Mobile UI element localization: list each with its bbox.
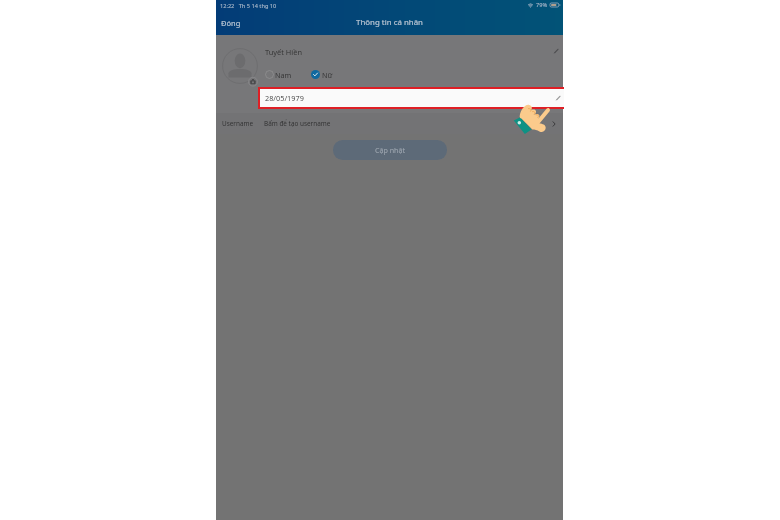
staticText: 12:22 Th 5 14 thg 10 — [220, 2, 277, 10]
staticText: Tuyết Hiền — [265, 47, 302, 57]
staticText: Đóng — [221, 18, 241, 28]
button[interactable]: Username — [216, 113, 563, 134]
staticText: Nam — [275, 70, 292, 79]
staticText: 28/05/1979 — [265, 93, 304, 103]
button[interactable]: 28/05/1979 — [260, 89, 564, 107]
staticText: Nữ — [322, 70, 333, 79]
staticText: Bấm để tạo username — [264, 119, 331, 128]
button[interactable]: Cập nhật — [333, 140, 447, 160]
other: Edit birthday — [555, 95, 561, 101]
button[interactable]: Đóng — [218, 16, 244, 30]
staticText: Username — [222, 119, 254, 128]
staticText: Cập nhật — [375, 145, 405, 155]
button[interactable]: Edit name — [553, 48, 559, 54]
other: Open username — [550, 120, 558, 128]
button[interactable]: Nữ — [311, 70, 333, 79]
staticText: Thông tin cá nhân — [356, 17, 423, 28]
staticText: 79% — [536, 1, 548, 9]
button[interactable]: Nam — [265, 70, 292, 79]
button[interactable]: Change profile photo — [222, 48, 258, 84]
